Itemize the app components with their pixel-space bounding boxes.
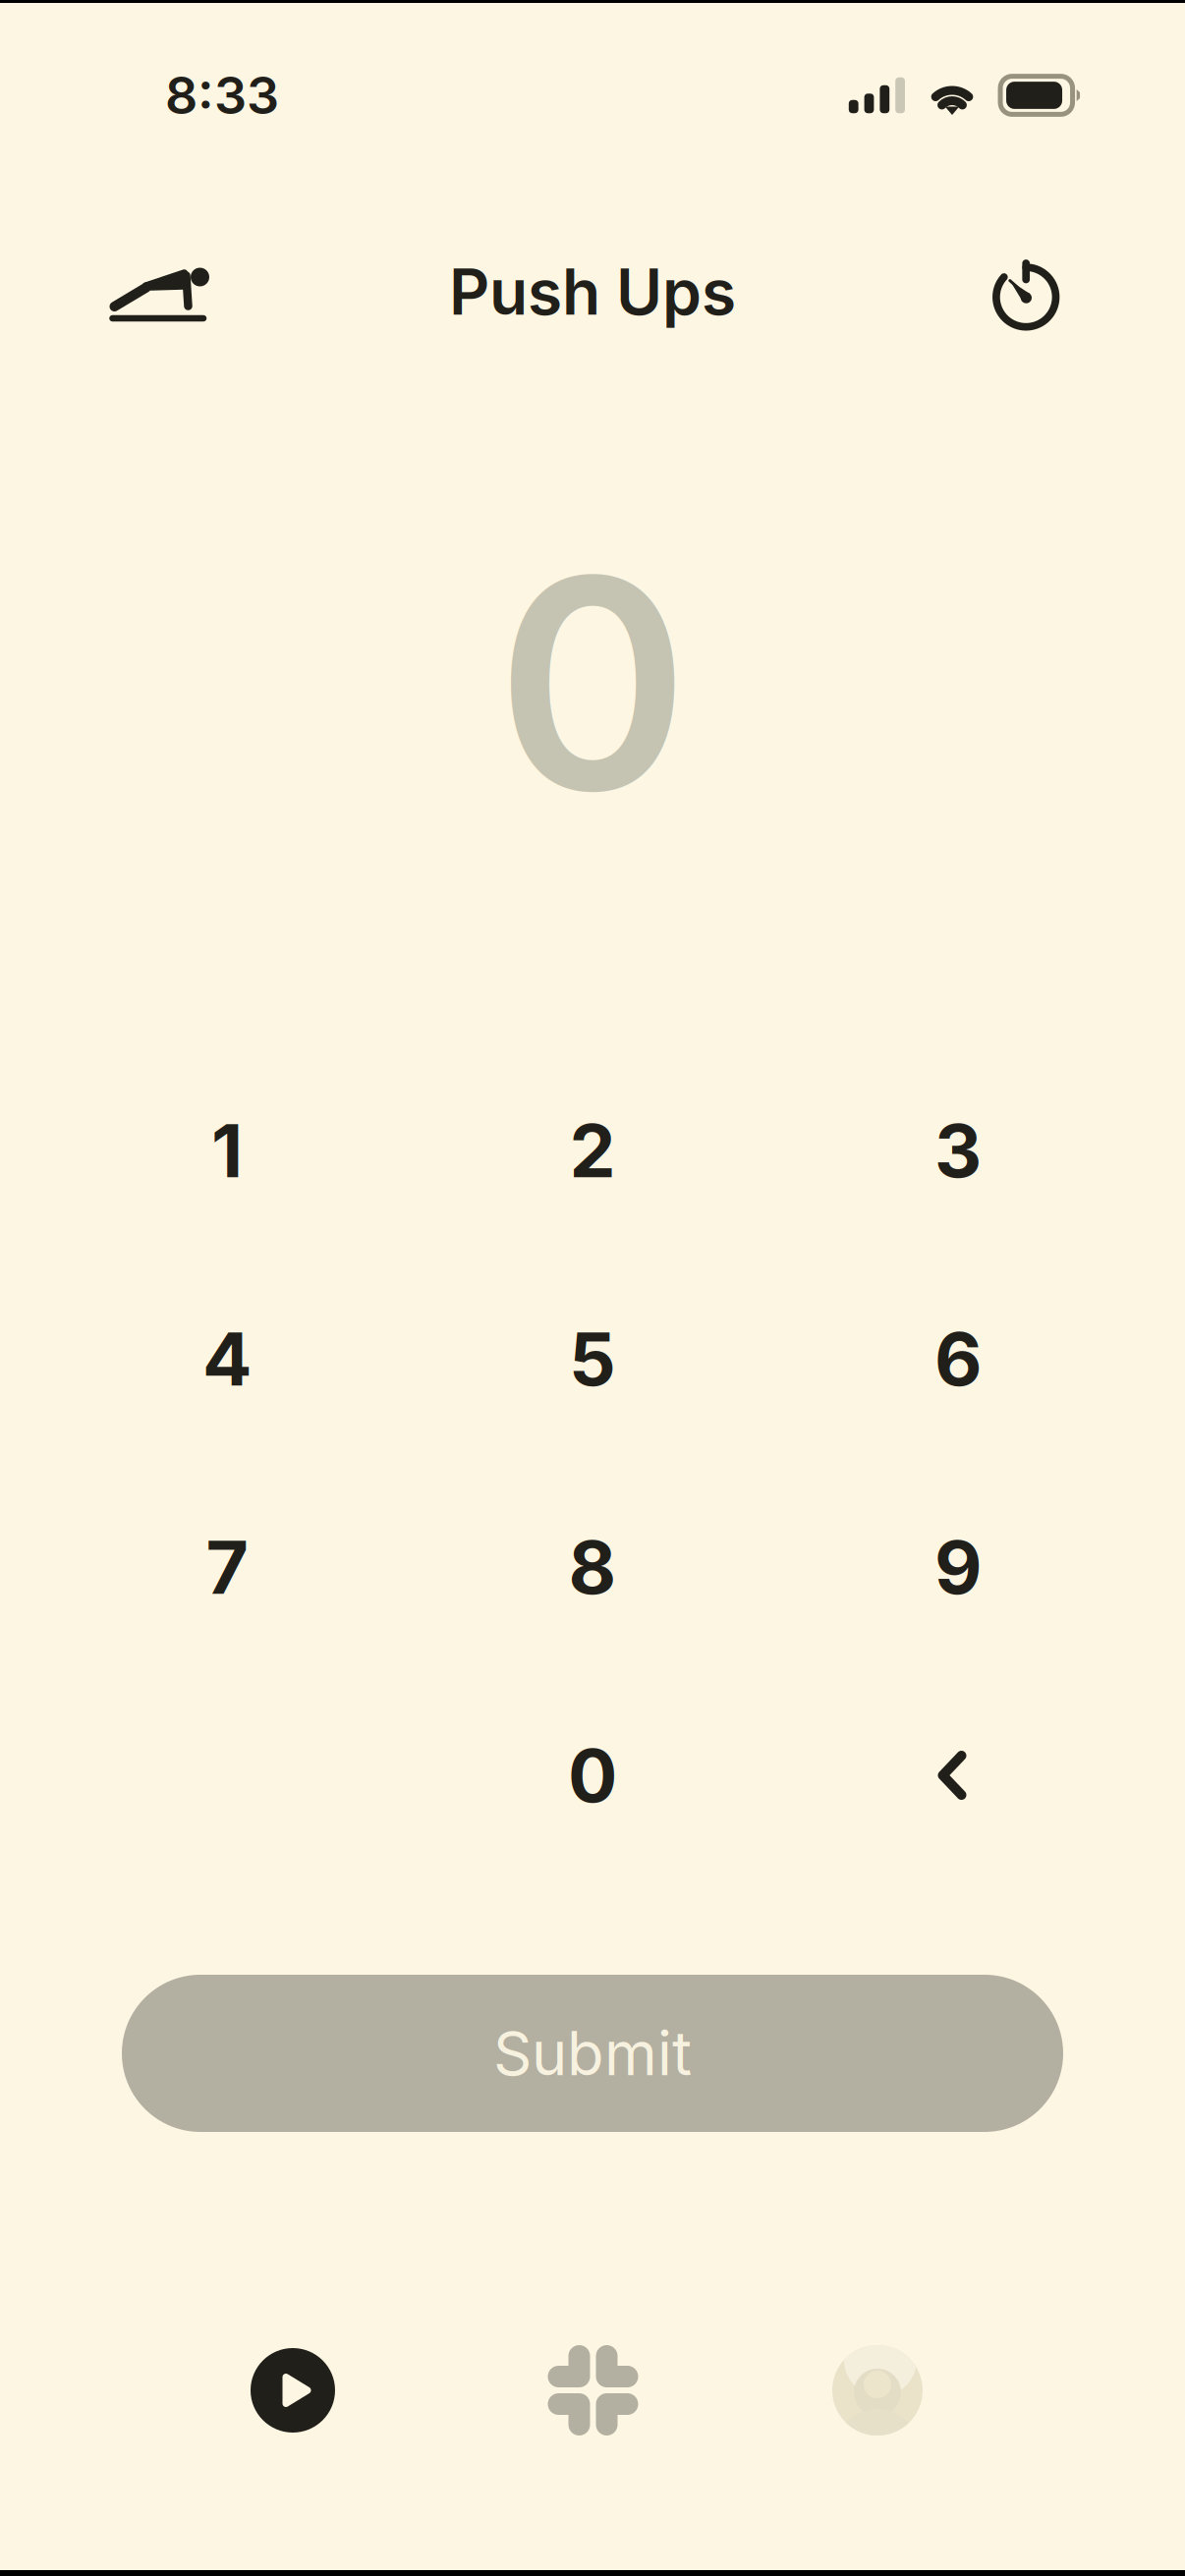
staticText: 0: [568, 1731, 617, 1820]
staticText: 6: [934, 1314, 982, 1403]
staticText: 3: [934, 1106, 982, 1195]
button[interactable]: 7: [44, 1463, 410, 1671]
staticText: 7: [206, 1523, 248, 1611]
staticText: Push Ups: [449, 254, 736, 330]
staticText: 9: [934, 1523, 982, 1611]
button[interactable]: 3: [775, 1046, 1141, 1255]
staticText: 0: [496, 506, 689, 860]
staticText: Submit: [493, 2017, 692, 2090]
button[interactable]: 2: [410, 1046, 775, 1255]
button[interactable]: 4: [44, 1255, 410, 1463]
staticText: 8:33: [165, 64, 279, 126]
button[interactable]: Exercise: [95, 238, 221, 346]
button[interactable]: Profile: [779, 2331, 976, 2449]
button[interactable]: Activity: [495, 2331, 691, 2449]
staticText: 4: [202, 1314, 252, 1403]
button[interactable]: Workouts: [195, 2331, 391, 2449]
button[interactable]: 9: [775, 1463, 1141, 1671]
button[interactable]: 5: [410, 1255, 775, 1463]
staticText: 8: [568, 1523, 617, 1611]
staticText: 2: [569, 1106, 616, 1195]
button[interactable]: Submit: [122, 1975, 1063, 2132]
staticText: 1: [211, 1106, 243, 1195]
button[interactable]: 1: [44, 1046, 410, 1255]
button[interactable]: Delete: [775, 1671, 1141, 1879]
staticText: 5: [569, 1314, 616, 1403]
button[interactable]: 8: [410, 1463, 775, 1671]
button[interactable]: 0: [410, 1671, 775, 1879]
button[interactable]: Timer: [963, 238, 1089, 346]
button[interactable]: 6: [775, 1255, 1141, 1463]
